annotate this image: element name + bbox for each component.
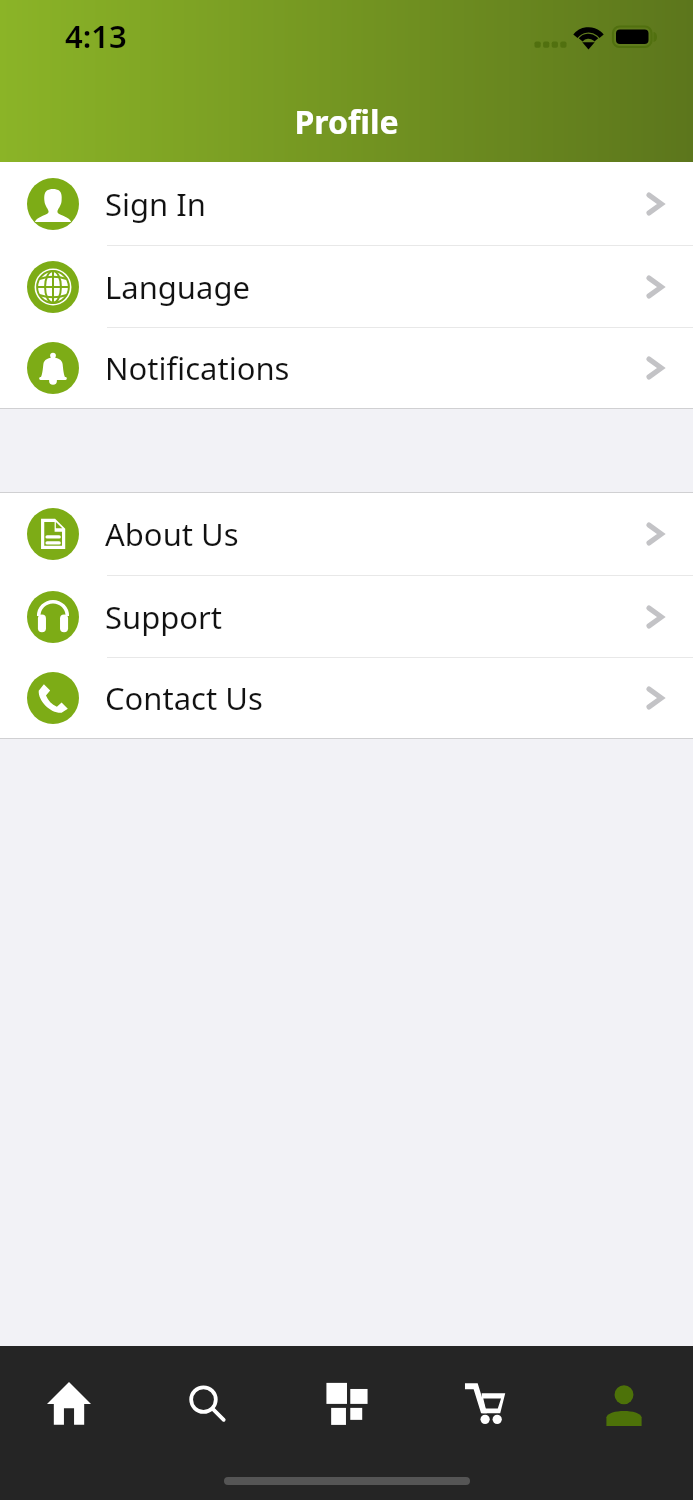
staticText: Profile (294, 100, 399, 144)
staticText: Notifications (105, 347, 290, 389)
button[interactable]: Profile (554, 1346, 693, 1461)
button[interactable]: Categories (276, 1346, 415, 1461)
button[interactable]: Cart (415, 1346, 554, 1461)
button[interactable]: Notifications (0, 328, 693, 408)
button[interactable]: Language (0, 246, 693, 327)
button[interactable]: Support (0, 576, 693, 657)
staticText: Language (105, 266, 250, 308)
button[interactable]: Home (0, 1346, 138, 1461)
button[interactable]: Sign In (0, 162, 693, 245)
button[interactable]: About Us (0, 493, 693, 575)
staticText: Support (105, 596, 223, 638)
button[interactable]: Search (138, 1346, 276, 1461)
staticText: Sign In (105, 183, 206, 225)
button[interactable]: Contact Us (0, 658, 693, 738)
staticText: 4:13 (65, 15, 127, 57)
staticText: Contact Us (105, 677, 263, 719)
staticText: About Us (105, 513, 239, 555)
